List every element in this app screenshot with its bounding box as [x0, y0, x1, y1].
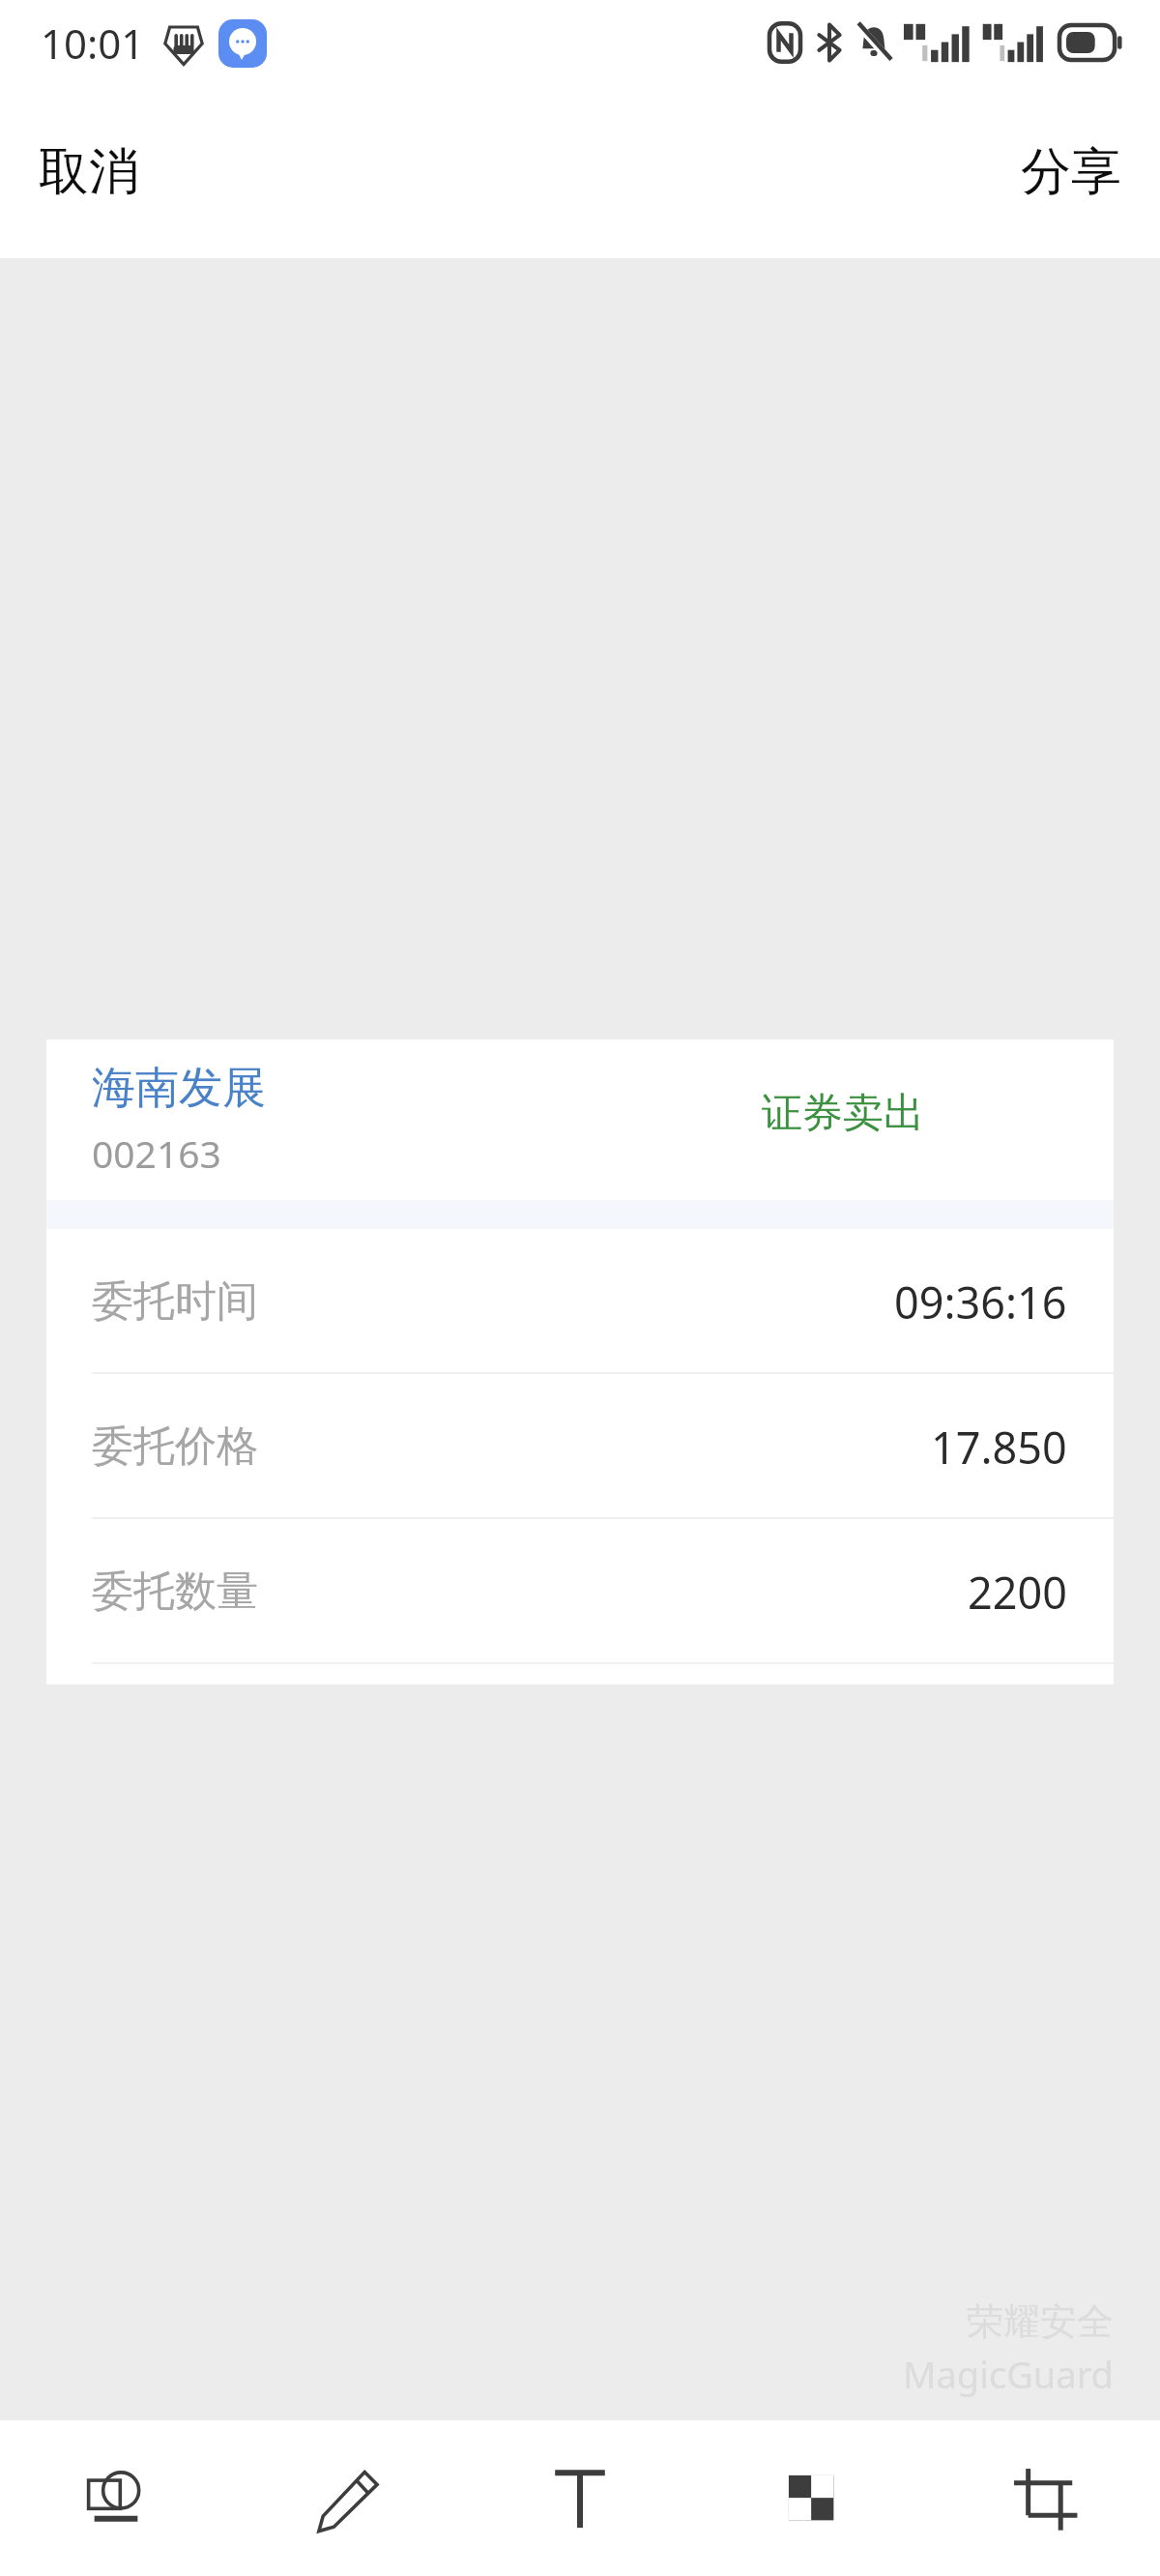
staticText: 17.850 — [931, 1418, 1067, 1477]
staticText: 委托数量 — [92, 1566, 258, 1618]
button[interactable]: 委托时间 — [46, 1229, 1114, 1374]
staticText: 分享 — [1021, 140, 1121, 204]
staticText: MagicGuard — [903, 2349, 1114, 2399]
staticText: 委托时间 — [92, 1275, 258, 1328]
button[interactable]: Add text — [464, 2420, 696, 2576]
button[interactable]: 分享 — [982, 113, 1160, 231]
staticText: 002163 — [92, 1127, 221, 1179]
staticText: 10:01 — [41, 15, 145, 71]
button[interactable]: 委托价格 — [46, 1374, 1114, 1519]
button[interactable]: Draw — [232, 2420, 464, 2576]
button[interactable]: Crop — [928, 2420, 1160, 2576]
button[interactable]: 取消 — [0, 113, 178, 231]
button[interactable]: 委托数量 — [46, 1519, 1114, 1664]
staticText: 09:36:16 — [894, 1273, 1067, 1332]
staticText: 证券卖出 — [762, 1088, 924, 1139]
staticText: 海南发展 — [92, 1061, 266, 1116]
button[interactable]: Mosaic — [696, 2420, 928, 2576]
staticText: 荣耀安全 — [967, 2298, 1114, 2345]
button[interactable]: 海南发展 — [46, 1039, 1114, 1684]
staticText: 委托价格 — [92, 1420, 258, 1473]
button[interactable]: Scroll capture — [0, 2420, 232, 2576]
staticText: 取消 — [39, 140, 139, 204]
staticText: 2200 — [968, 1563, 1067, 1622]
